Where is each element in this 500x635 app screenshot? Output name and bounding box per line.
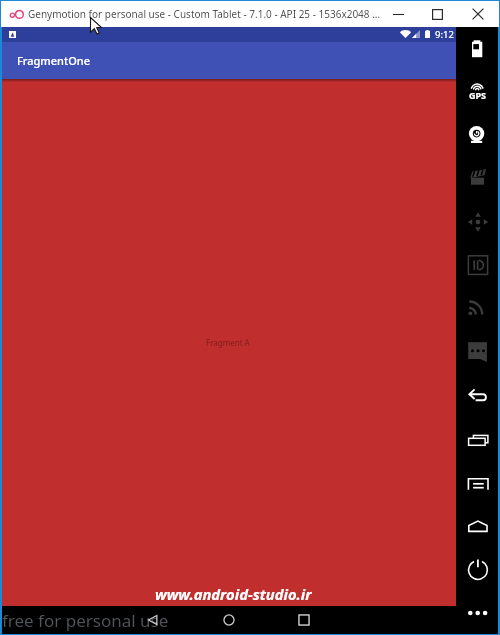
- button[interactable]: Menu: [461, 467, 495, 499]
- button[interactable]: Video recorder: [461, 162, 495, 194]
- staticText: FragmentOne: [17, 53, 91, 68]
- button[interactable]: Home: [461, 510, 495, 542]
- button[interactable]: Identifiers: [461, 249, 495, 281]
- button[interactable]: Battery: [461, 33, 495, 65]
- button[interactable]: Recent apps: [293, 609, 315, 631]
- button[interactable]: Network: [461, 290, 495, 322]
- staticText: GPS: [469, 89, 487, 101]
- button[interactable]: More: [461, 597, 495, 629]
- button[interactable]: Close: [457, 1, 499, 27]
- staticText: Genymotion for personal use - Custom Tab…: [28, 7, 381, 21]
- button[interactable]: Back: [461, 379, 495, 411]
- button[interactable]: Move: [461, 206, 495, 238]
- staticText: free for personal use: [2, 609, 169, 632]
- button[interactable]: Power: [461, 554, 495, 586]
- staticText: 9:12: [435, 28, 454, 41]
- button[interactable]: GPS: [461, 74, 495, 106]
- button[interactable]: Messages: [461, 334, 495, 366]
- button[interactable]: Camera: [461, 117, 495, 149]
- button[interactable]: Recent apps: [461, 424, 495, 456]
- button[interactable]: Maximize: [418, 1, 457, 27]
- staticText: www.android-studio.ir: [155, 584, 312, 604]
- button[interactable]: Back: [142, 609, 164, 631]
- button[interactable]: Home: [218, 609, 240, 631]
- staticText: Fragment A: [206, 337, 250, 348]
- button[interactable]: Minimize: [378, 1, 418, 27]
